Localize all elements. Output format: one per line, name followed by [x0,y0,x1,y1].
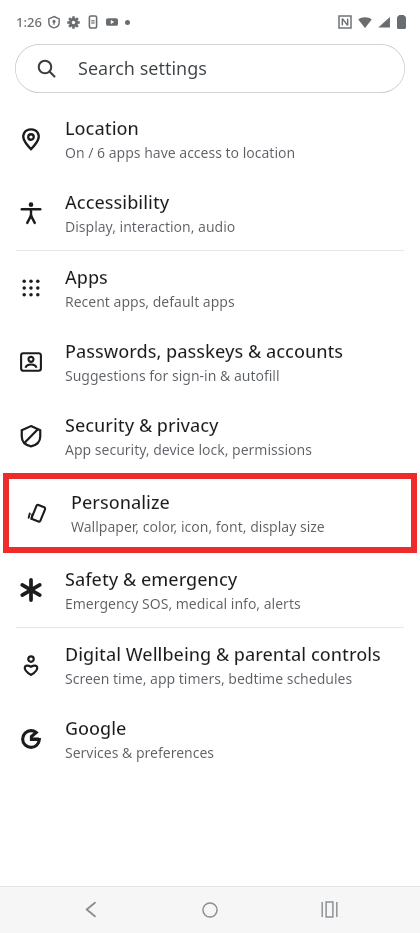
button[interactable]: Security & privacy [0,399,420,473]
staticText: Services & preferences [65,743,215,762]
button[interactable]: Google [0,702,420,776]
staticText: Location [65,116,139,141]
staticText: Security & privacy [65,413,219,438]
staticText: Recent apps, default apps [65,292,235,311]
staticText: On / 6 apps have access to location [65,143,296,162]
staticText: 1:26 [16,13,42,31]
staticText: Screen time, app timers, bedtime schedul… [65,669,353,688]
button[interactable]: Accessibility [0,176,420,250]
button[interactable]: Safety & emergency [0,553,420,627]
staticText: Emergency SOS, medical info, alerts [65,594,301,613]
staticText: Search settings [78,56,207,81]
staticText: App security, device lock, permissions [65,440,312,459]
button[interactable]: Location [0,102,420,176]
staticText: Safety & emergency [65,567,238,592]
button[interactable]: Personalize [6,476,414,550]
button[interactable]: Back [63,886,119,933]
button[interactable]: Search settings [15,44,405,93]
staticText: Personalize [71,490,170,515]
staticText: Passwords, passkeys & accounts [65,339,344,364]
button[interactable]: Apps [0,251,420,325]
button[interactable]: Recent apps [301,886,357,933]
staticText: Google [65,716,127,741]
staticText: Digital Wellbeing & parental controls [65,642,381,667]
button[interactable]: Passwords, passkeys & accounts [0,325,420,399]
staticText: Wallpaper, color, icon, font, display si… [71,517,325,536]
staticText: Accessibility [65,190,170,215]
button[interactable]: Digital Wellbeing & parental controls [0,628,420,702]
staticText: Display, interaction, audio [65,217,236,236]
staticText: Apps [65,265,108,290]
staticText: Suggestions for sign-in & autofill [65,366,280,385]
button[interactable]: Home [182,886,238,933]
